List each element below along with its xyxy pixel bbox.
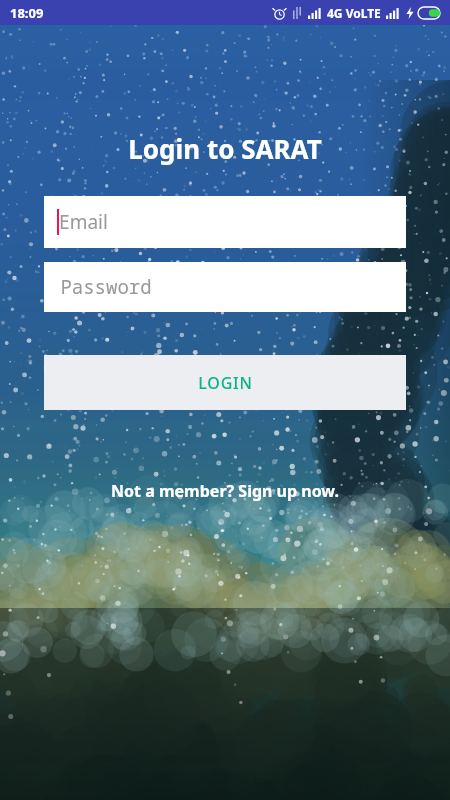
staticText: LOGIN [198, 372, 253, 394]
button[interactable]: LOGIN [44, 355, 406, 410]
staticText: 18:09 [10, 4, 44, 22]
staticText: Email [59, 209, 108, 235]
staticText: Password [60, 274, 152, 300]
staticText: Not a member? Sign up now. [111, 480, 339, 502]
staticText: 4G VoLTE [327, 5, 381, 21]
button[interactable]: Email [44, 196, 406, 248]
button[interactable]: Password [44, 262, 406, 312]
button[interactable]: Not a member? Sign up now. [103, 476, 347, 506]
staticText: Login to SARAT [128, 131, 322, 166]
